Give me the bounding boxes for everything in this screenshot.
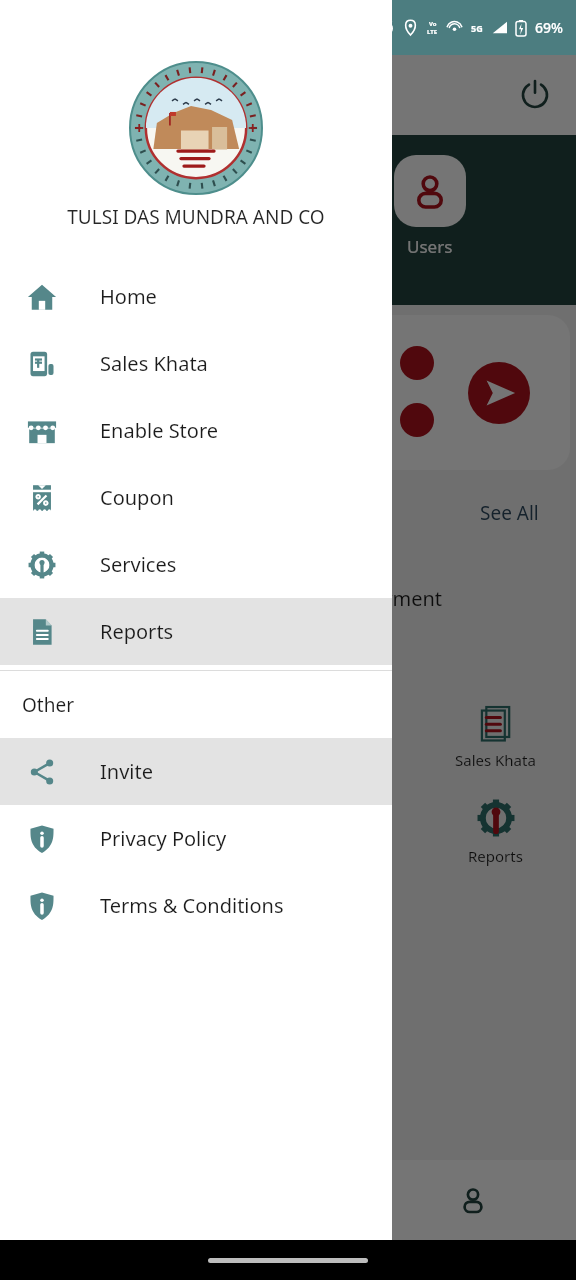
button[interactable]: Terms & Conditions [0,872,392,939]
button[interactable]: Home [0,263,392,330]
staticText: Users [407,235,453,258]
staticText: Vo [429,20,437,28]
staticText: Terms & Conditions [100,892,284,919]
staticText: Pay payment [320,585,442,612]
button[interactable]: Enable Store [0,397,392,464]
button[interactable]: Profile [443,1170,503,1230]
staticText: Coupon [100,484,174,511]
staticText: Home [100,283,157,310]
button[interactable]: Sales Khata [455,700,536,770]
staticText: Sales Khata [455,750,536,770]
staticText: Reports [100,618,174,645]
staticText: LTE [427,28,438,36]
button[interactable]: Sales Khata [0,330,392,397]
button[interactable]: Users [394,155,466,258]
staticText: Invite [100,758,153,785]
button[interactable]: Reports [468,796,523,866]
staticText: TULSI DAS MUNDRA AND CO [0,204,392,230]
staticText: See All [480,500,539,526]
staticText: Services [100,551,177,578]
staticText: Enable Store [100,417,219,444]
staticText: Reports [468,846,523,866]
staticText: Other [22,692,75,718]
button[interactable]: Send [290,315,570,470]
button[interactable]: Privacy Policy [0,805,392,872]
staticText: Privacy Policy [100,825,227,852]
button[interactable]: Invite [0,738,392,805]
staticText: Sales Khata [100,350,208,377]
button[interactable]: Services [0,531,392,598]
button[interactable]: Send [468,362,530,424]
staticText: 69% [535,18,563,37]
staticText: 5G [471,22,483,34]
button[interactable]: Reports [0,598,392,665]
button[interactable]: Power [514,74,556,116]
button[interactable]: Pay [300,155,372,258]
button[interactable]: Coupon [0,464,392,531]
